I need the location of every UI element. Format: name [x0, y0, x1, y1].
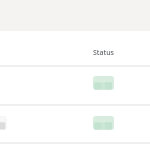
other: Active	[93, 76, 114, 90]
button[interactable]: Active	[0, 67, 150, 104]
staticText: Status	[93, 48, 115, 58]
other: Open	[0, 116, 7, 130]
other: Active	[93, 116, 114, 130]
button[interactable]: Status	[0, 31, 150, 65]
button[interactable]: Open	[0, 106, 150, 142]
